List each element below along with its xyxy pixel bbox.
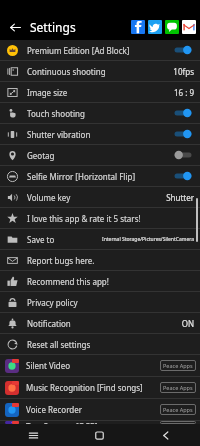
staticText: Premium Edition [Ad Block] (27, 45, 130, 56)
button[interactable]: Shutter vibration (0, 124, 200, 145)
button[interactable]: Share (165, 20, 179, 34)
staticText: Touch shooting (27, 108, 85, 119)
button[interactable]: Toggle (172, 106, 194, 120)
staticText: Peace Apps (163, 406, 193, 413)
staticText: Report bugs here. (27, 255, 95, 266)
button[interactable]: Back (6, 18, 24, 36)
staticText: 16 : 9 (173, 87, 194, 98)
button[interactable]: Toggle (172, 127, 194, 141)
button[interactable]: Music Recognition [Find songs] (0, 377, 200, 399)
button[interactable]: Share (131, 20, 145, 34)
staticText: Voice Recorder (26, 404, 83, 415)
button[interactable]: Recents (0, 424, 66, 446)
button[interactable]: Home (66, 424, 133, 446)
staticText: Notification (27, 318, 71, 329)
staticText: Continuous shooting (27, 66, 106, 77)
button[interactable]: Privacy policy (0, 292, 200, 313)
staticText: Peace Apps (163, 362, 193, 369)
button[interactable]: Text Scanner [OCR] (0, 421, 200, 424)
button[interactable]: Notification (0, 313, 200, 334)
staticText: Shutter (166, 192, 194, 203)
staticText: Recommend this app! (27, 276, 109, 287)
button[interactable]: Recommend this app! (0, 271, 200, 292)
staticText: Geotag (27, 150, 55, 161)
staticText: Reset all settings (27, 339, 91, 350)
staticText: Save to (27, 234, 55, 245)
staticText: Privacy policy (27, 297, 78, 308)
staticText: Volume key (27, 192, 71, 203)
button[interactable]: Premium Edition [Ad Block] (0, 40, 200, 61)
button[interactable]: Reset all settings (0, 334, 200, 355)
staticText: Peace Apps (163, 384, 193, 391)
button[interactable]: Selfie Mirror [Horizontal Flip] (0, 166, 200, 187)
button[interactable]: Continuous shooting (0, 61, 200, 82)
button[interactable]: Geotag (0, 145, 200, 166)
staticText: Internal Storage/Pictures/SilentCamera (102, 236, 194, 243)
staticText: ON (181, 318, 194, 329)
button[interactable]: Toggle (172, 169, 194, 183)
button[interactable]: Toggle (172, 43, 194, 57)
staticText: Settings (30, 19, 76, 35)
button[interactable]: Back (133, 424, 200, 446)
button[interactable]: Report bugs here. (0, 250, 200, 271)
button[interactable]: Silent Video (0, 355, 200, 377)
button[interactable]: Image size (0, 82, 200, 103)
staticText: Music Recognition [Find songs] (26, 382, 143, 393)
staticText: Shutter vibration (27, 129, 91, 140)
button[interactable]: Volume key (0, 187, 200, 208)
button[interactable]: Share (148, 20, 162, 34)
staticText: Selfie Mirror [Horizontal Flip] (27, 171, 136, 182)
button[interactable]: I love this app & rate it 5 stars! (0, 208, 200, 229)
staticText: Silent Video (26, 360, 71, 371)
button[interactable]: Toggle (172, 148, 194, 162)
staticText: Image size (27, 87, 68, 98)
button[interactable]: Save to (0, 229, 200, 250)
button[interactable]: Touch shooting (0, 103, 200, 124)
staticText: Text Scanner [OCR] (26, 421, 98, 424)
button[interactable]: Share (182, 20, 196, 34)
staticText: 10fps (173, 66, 194, 77)
staticText: I love this app & rate it 5 stars! (27, 213, 141, 224)
button[interactable]: Voice Recorder (0, 399, 200, 421)
